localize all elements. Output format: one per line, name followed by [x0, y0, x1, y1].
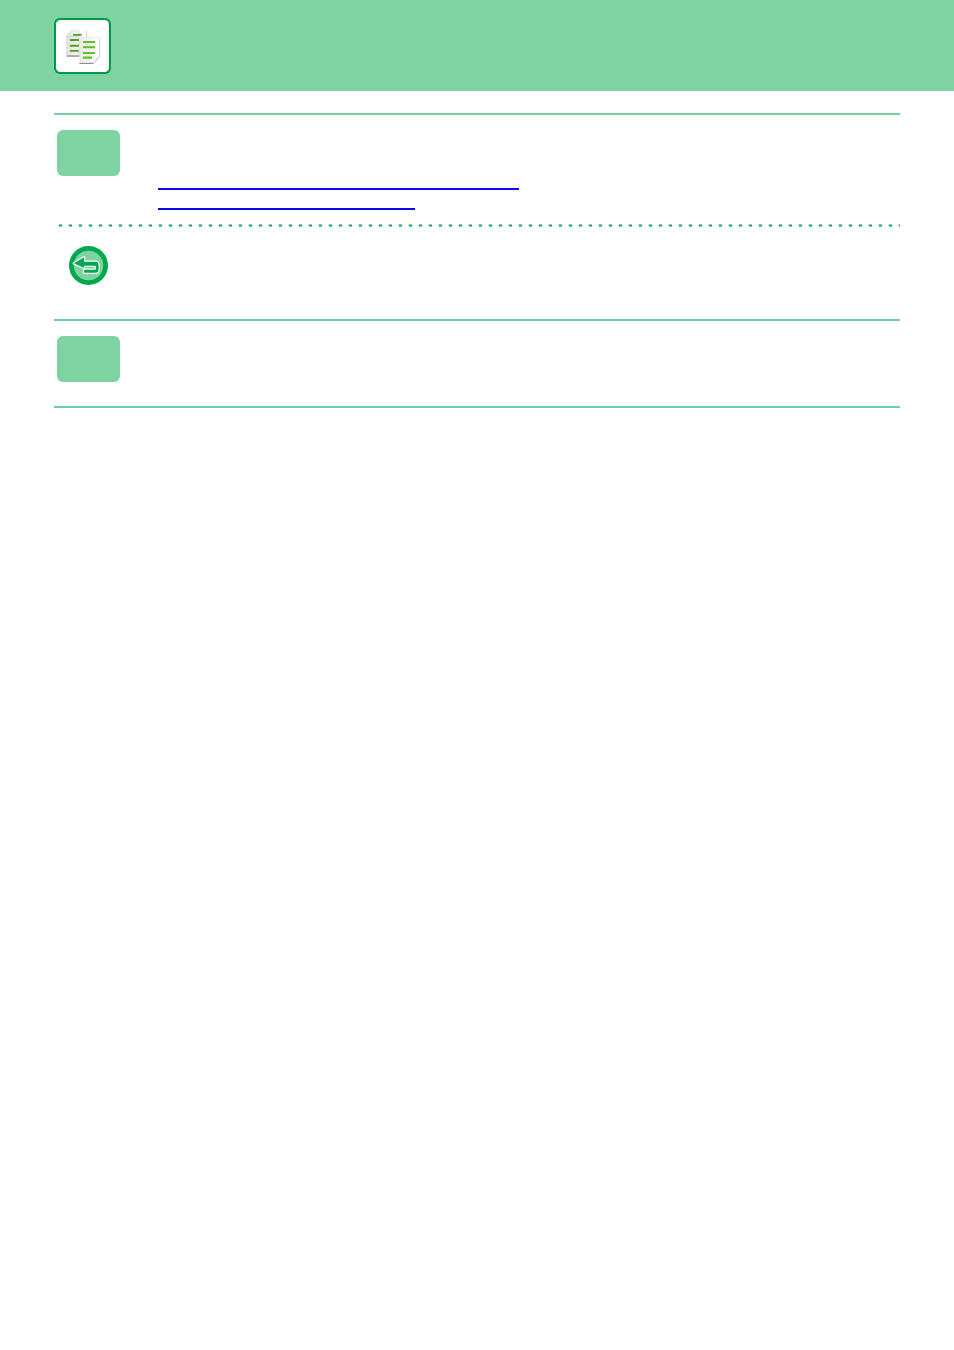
button[interactable]: Step 1: [57, 130, 120, 176]
button[interactable]: Back: [69, 246, 108, 285]
button[interactable]: Copy: [56, 20, 109, 72]
button[interactable]: Step 2: [57, 336, 120, 382]
